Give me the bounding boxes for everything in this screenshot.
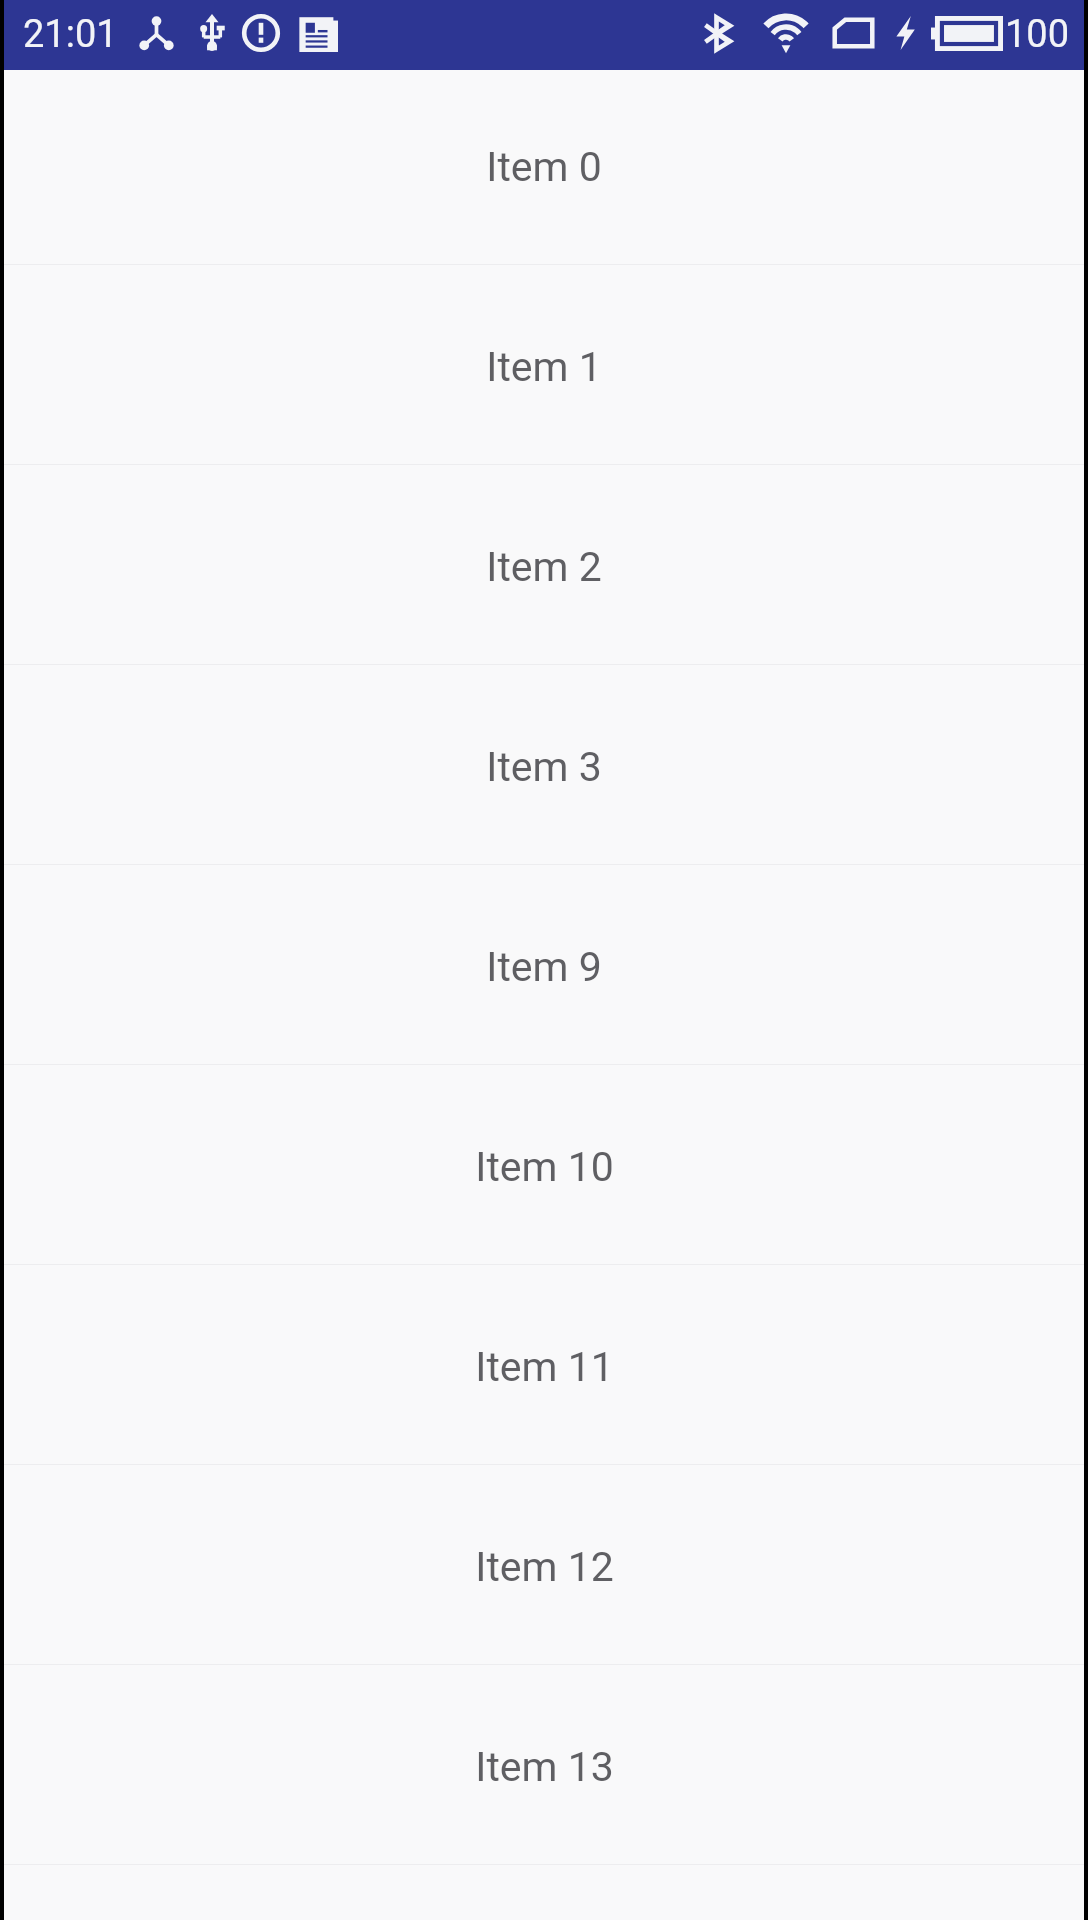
staticText: Item 10	[475, 1143, 614, 1191]
button[interactable]: Item 12	[4, 1465, 1084, 1665]
button[interactable]: Item 0	[4, 70, 1084, 265]
staticText: Item 2	[486, 543, 602, 591]
staticText: Item 9	[486, 943, 602, 991]
other: Battery	[931, 16, 1003, 51]
staticText: Item 12	[475, 1543, 614, 1591]
other: Alert	[240, 13, 282, 53]
button[interactable]: Item 3	[4, 665, 1084, 865]
button[interactable]: Item 9	[4, 865, 1084, 1065]
other: SIM card	[832, 17, 875, 49]
staticText: Item 13	[475, 1743, 614, 1791]
other: USB debugging	[137, 16, 176, 51]
other: USB connected	[199, 14, 225, 53]
other: Bluetooth	[703, 16, 733, 51]
button[interactable]: Item 1	[4, 265, 1084, 465]
button[interactable]: Item 10	[4, 1065, 1084, 1265]
button[interactable]: Item 11	[4, 1265, 1084, 1465]
staticText: Item 0	[486, 143, 602, 191]
other: Wi-Fi	[763, 13, 809, 53]
staticText: Item 3	[486, 743, 602, 791]
staticText: 21:01	[23, 12, 118, 57]
other: Charging	[896, 16, 915, 50]
button[interactable]: Item 13	[4, 1665, 1084, 1865]
staticText: 100	[1005, 12, 1070, 57]
other: News notification	[296, 15, 338, 52]
button[interactable]: Item 2	[4, 465, 1084, 665]
staticText: Item 1	[486, 343, 602, 391]
staticText: Item 11	[475, 1343, 614, 1391]
